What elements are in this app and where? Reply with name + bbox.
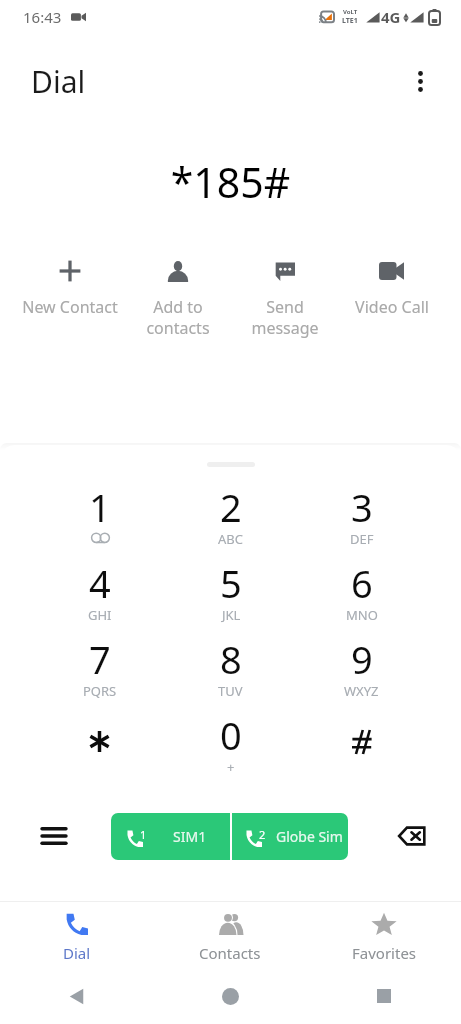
staticText: MNO [346, 606, 378, 624]
button[interactable]: New Contact [16, 256, 124, 318]
staticText: 16:43 [23, 7, 62, 27]
button[interactable]: 2 [165, 481, 296, 557]
staticText: LTE1 [342, 16, 358, 26]
staticText: 4 [89, 557, 111, 609]
button[interactable]: 0 [165, 709, 296, 785]
staticText: 0 [220, 709, 242, 761]
staticText: Video Call [355, 296, 429, 318]
button[interactable]: Contacts [153, 901, 307, 968]
button[interactable]: 1 [111, 813, 230, 860]
button[interactable]: 2 [232, 813, 348, 860]
button[interactable]: Back [0, 968, 153, 1024]
staticText: 2 [220, 481, 242, 533]
staticText: Favorites [352, 943, 417, 963]
button[interactable]: 6 [296, 557, 427, 633]
button[interactable]: 4 [34, 557, 165, 633]
staticText: JKL [222, 606, 241, 624]
staticText: Globe Sim [276, 827, 343, 846]
staticText: PQRS [83, 682, 117, 700]
staticText: 1 [89, 481, 111, 533]
staticText: 5 [220, 557, 242, 609]
staticText: 7 [89, 633, 111, 685]
staticText: TUV [218, 682, 243, 700]
button[interactable]: More options [398, 59, 442, 103]
button[interactable]: 9 [296, 633, 427, 709]
staticText: Send message [251, 296, 319, 339]
staticText: 1 [140, 827, 147, 842]
button[interactable]: Video Call [338, 256, 445, 318]
staticText: Dial [31, 61, 86, 102]
staticText: 4G [381, 7, 401, 27]
staticText: New Contact [22, 296, 118, 318]
staticText: 9 [351, 633, 373, 685]
staticText: 8 [220, 633, 242, 685]
staticText: *185# [0, 154, 461, 210]
button[interactable]: Send message [231, 256, 338, 339]
staticText: 2 [259, 827, 266, 842]
staticText: WXYZ [344, 682, 379, 700]
staticText: VoLT [343, 8, 358, 16]
staticText: DEF [350, 530, 374, 548]
staticText: GHI [88, 606, 112, 624]
button[interactable]: Home [153, 968, 307, 1024]
staticText: 6 [351, 557, 373, 609]
button[interactable]: Recents [307, 968, 461, 1024]
staticText: Dial [63, 943, 91, 963]
button[interactable] [34, 709, 165, 785]
staticText: Add to contacts [146, 296, 210, 339]
button[interactable] [296, 709, 427, 785]
button[interactable]: Backspace [389, 813, 435, 859]
button[interactable]: 5 [165, 557, 296, 633]
button[interactable]: 8 [165, 633, 296, 709]
button[interactable]: Add to contacts [124, 256, 231, 339]
staticText: Contacts [199, 943, 261, 963]
staticText: SIM1 [173, 827, 207, 846]
button[interactable]: Favorites [307, 901, 461, 968]
button[interactable]: 3 [296, 481, 427, 557]
staticText: ABC [218, 530, 243, 548]
staticText: + [227, 758, 235, 776]
button[interactable]: 1 [34, 481, 165, 557]
button[interactable]: Menu [31, 813, 77, 859]
button[interactable]: Dial [0, 901, 153, 968]
staticText: 3 [351, 481, 373, 533]
button[interactable]: 7 [34, 633, 165, 709]
